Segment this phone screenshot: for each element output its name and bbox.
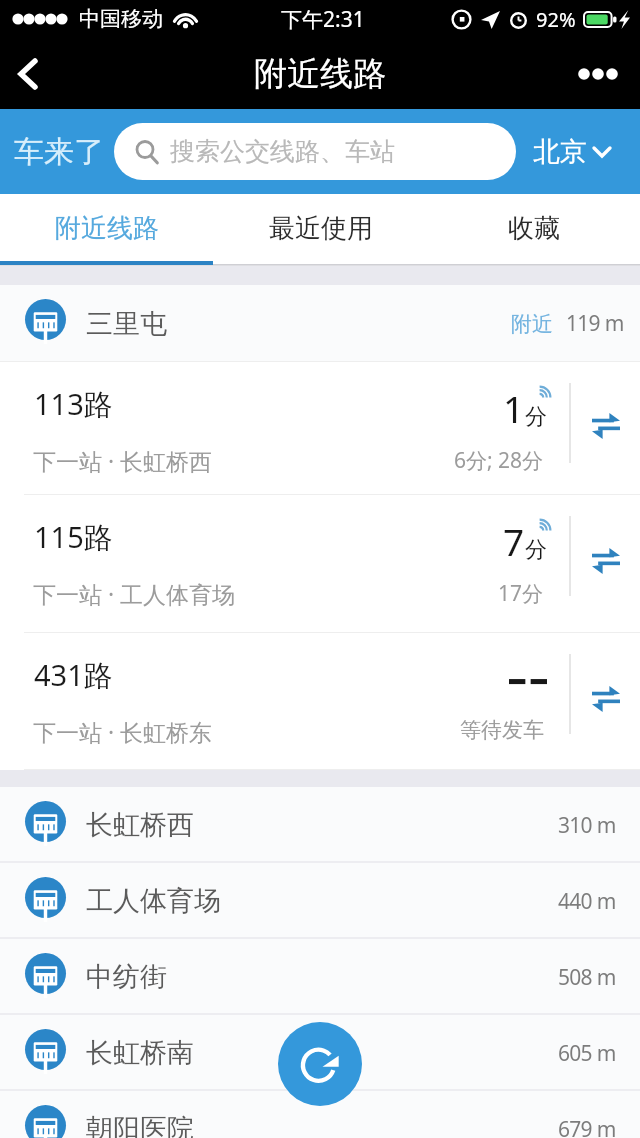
staticText: 17分 bbox=[498, 579, 544, 608]
button[interactable]: 中纺街 bbox=[0, 939, 640, 1015]
staticText: 下一站 · 长虹桥西 bbox=[33, 445, 213, 476]
button[interactable]: Reverse direction bbox=[569, 633, 640, 770]
staticText: 310 m bbox=[558, 811, 616, 840]
button[interactable]: 工人体育场 bbox=[0, 863, 640, 939]
button[interactable]: 车来了 bbox=[14, 133, 104, 171]
button[interactable]: More options bbox=[556, 38, 640, 109]
staticText: 北京 bbox=[533, 135, 587, 169]
staticText: 附近线路 bbox=[55, 212, 159, 245]
button[interactable]: Reverse direction bbox=[569, 495, 640, 633]
staticText: 三里屯 bbox=[86, 307, 167, 341]
button[interactable]: 最近使用 bbox=[214, 194, 427, 262]
staticText: 收藏 bbox=[508, 212, 560, 245]
staticText: 附近 bbox=[511, 311, 553, 337]
staticText: 下一站 · 长虹桥东 bbox=[33, 716, 213, 747]
button[interactable]: 431路 bbox=[0, 633, 640, 770]
staticText: 分 bbox=[525, 536, 547, 564]
button[interactable]: 搜索公交线路、车站 bbox=[114, 123, 516, 180]
staticText: 115路 bbox=[34, 517, 113, 557]
button[interactable]: 收藏 bbox=[427, 194, 640, 262]
staticText: 下午2:31 bbox=[281, 5, 365, 34]
button[interactable]: Reverse direction bbox=[569, 362, 640, 495]
button[interactable]: 115路 bbox=[0, 495, 640, 633]
staticText: 119 m bbox=[566, 309, 624, 338]
staticText: 等待发车 bbox=[460, 717, 544, 743]
staticText: 中国移动 bbox=[79, 6, 163, 32]
staticText: 605 m bbox=[558, 1039, 616, 1068]
staticText: 1 bbox=[503, 383, 525, 433]
staticText: 最近使用 bbox=[269, 212, 373, 245]
staticText: 440 m bbox=[558, 887, 616, 916]
staticText: 工人体育场 bbox=[86, 884, 221, 918]
button[interactable]: 113路 bbox=[0, 362, 640, 495]
button[interactable]: 长虹桥西 bbox=[0, 787, 640, 863]
staticText: 508 m bbox=[558, 963, 616, 992]
button[interactable]: Back bbox=[0, 38, 56, 109]
staticText: 679 m bbox=[558, 1115, 616, 1138]
button[interactable]: 三里屯 bbox=[0, 285, 640, 362]
staticText: 下一站 · 工人体育场 bbox=[33, 578, 236, 609]
button[interactable]: Refresh bbox=[278, 1022, 362, 1106]
staticText: 中纺街 bbox=[86, 960, 167, 994]
staticText: 长虹桥南 bbox=[86, 1036, 194, 1070]
button[interactable]: 朝阳医院 bbox=[0, 1091, 640, 1138]
staticText: 92% bbox=[536, 6, 576, 33]
staticText: 长虹桥西 bbox=[86, 808, 194, 842]
staticText: 附近线路 bbox=[254, 53, 386, 95]
staticText: 朝阳医院 bbox=[86, 1112, 194, 1138]
staticText: 431路 bbox=[34, 655, 113, 695]
staticText: 分 bbox=[525, 403, 547, 431]
button[interactable]: 附近线路 bbox=[0, 194, 214, 262]
staticText: 搜索公交线路、车站 bbox=[170, 136, 395, 167]
staticText: 113路 bbox=[34, 384, 113, 424]
button[interactable]: 长虹桥南 bbox=[0, 1015, 640, 1091]
button[interactable]: 北京 bbox=[533, 135, 612, 169]
staticText: 6分; 28分 bbox=[454, 446, 544, 475]
staticText: 7 bbox=[503, 516, 525, 566]
